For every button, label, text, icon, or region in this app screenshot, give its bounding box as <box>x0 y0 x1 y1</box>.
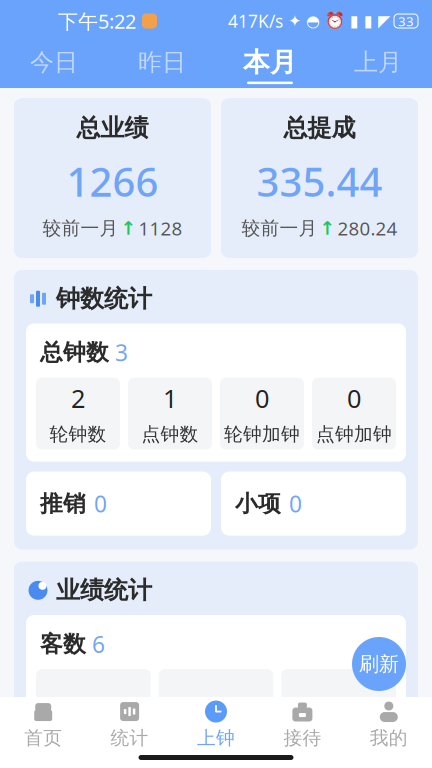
staticText: 轮钟数 <box>49 423 106 446</box>
staticText: 3 <box>115 337 128 368</box>
staticText: 较前一月 <box>241 217 317 240</box>
staticText: 上钟 <box>197 726 235 749</box>
staticText: 下午5:22 <box>58 8 136 34</box>
staticText: 280.24 <box>337 216 397 241</box>
staticText: 0 <box>255 381 269 415</box>
staticText: ↑ <box>120 218 136 239</box>
staticText: 钟数统计 <box>56 284 152 313</box>
staticText: 首页 <box>24 726 62 749</box>
button[interactable]: 统计 <box>86 697 173 753</box>
staticText: 0 <box>347 381 361 415</box>
staticText: 昨日 <box>138 47 186 77</box>
staticText: 今日 <box>30 47 78 77</box>
staticText: ✦ <box>288 12 301 30</box>
button[interactable]: 本月 <box>216 42 324 88</box>
button[interactable]: 接待 <box>259 697 346 753</box>
staticText: 刷新 <box>359 652 399 676</box>
staticText: 1128 <box>138 216 182 241</box>
button[interactable]: 刷新 <box>352 637 406 691</box>
staticText: 417K/s <box>228 9 283 32</box>
staticText: 推销 <box>40 490 86 517</box>
staticText: 2 <box>71 381 85 415</box>
staticText: 接待 <box>283 726 321 749</box>
staticText: ▮ <box>350 12 359 30</box>
staticText: 点钟加钟 <box>316 423 392 446</box>
staticText: 本月 <box>243 46 297 79</box>
staticText: 小项 <box>235 490 281 517</box>
staticText: 业绩统计 <box>56 576 152 605</box>
staticText: 上月 <box>354 47 402 77</box>
staticText: 335.44 <box>256 155 382 208</box>
staticText: 较前一月 <box>42 217 118 240</box>
staticText: 客数 <box>40 630 86 658</box>
staticText: 统计 <box>111 726 149 749</box>
staticText: ◓ <box>306 12 320 30</box>
staticText: 6 <box>92 629 105 659</box>
staticText: 0 <box>94 488 107 519</box>
button[interactable]: 上钟 <box>173 697 259 753</box>
staticText: 总钟数 <box>40 339 109 366</box>
button[interactable]: 今日 <box>0 42 108 88</box>
staticText: 轮钟加钟 <box>224 423 300 446</box>
button[interactable]: 我的 <box>346 697 432 753</box>
staticText: 总业绩 <box>76 113 148 143</box>
staticText: 点钟数 <box>141 423 198 446</box>
staticText: ▮ <box>364 12 373 30</box>
staticText: ⏰ <box>325 12 345 30</box>
button[interactable]: 昨日 <box>108 42 216 88</box>
staticText: 总提成 <box>283 113 355 143</box>
staticText: 我的 <box>370 726 408 749</box>
staticText: 1266 <box>66 155 158 208</box>
staticText: 33 <box>398 12 414 30</box>
button[interactable]: 上月 <box>324 42 432 88</box>
staticText: 0 <box>289 488 302 519</box>
button[interactable]: 首页 <box>0 697 86 753</box>
staticText: ◤ <box>378 12 390 30</box>
staticText: ↑ <box>319 218 335 239</box>
staticText: 1 <box>163 381 177 415</box>
